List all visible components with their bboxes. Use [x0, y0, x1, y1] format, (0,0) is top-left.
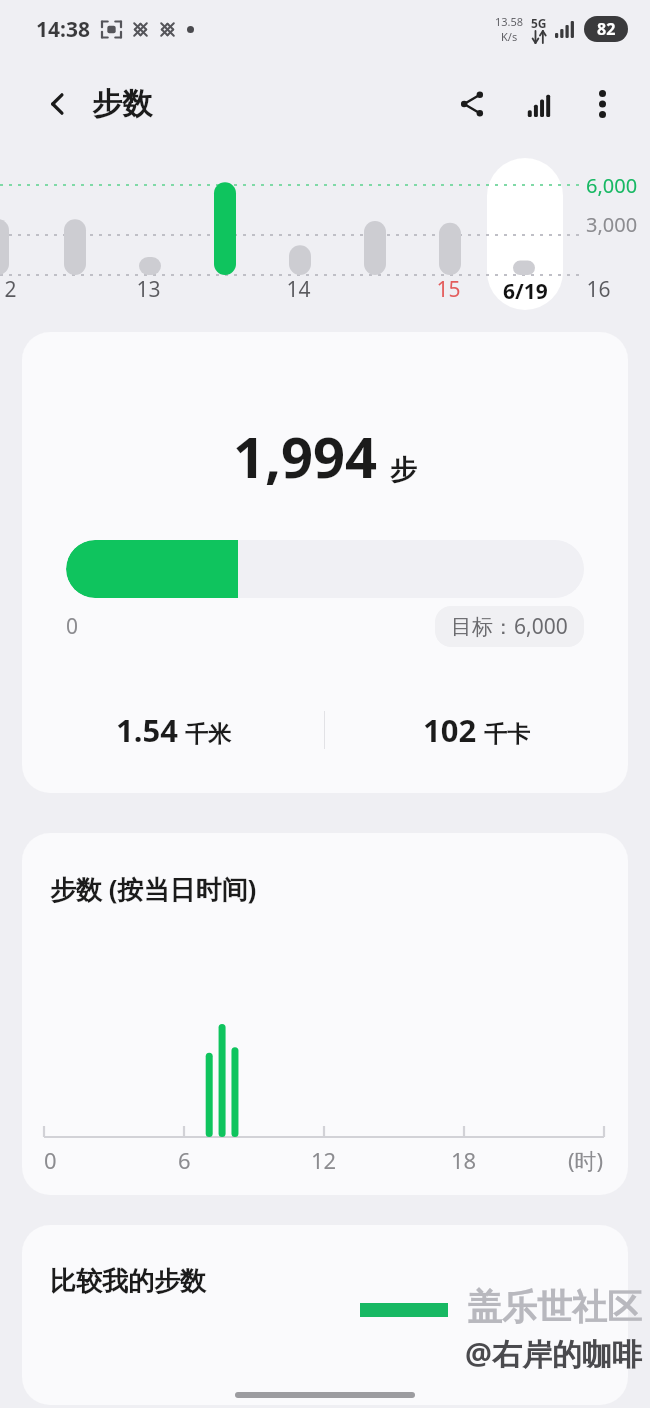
staticText: 14:38 — [36, 15, 90, 44]
button[interactable]: More options — [576, 78, 628, 130]
staticText: 盖乐世社区 — [467, 1285, 642, 1329]
staticText: 步数 (按当日时间) — [50, 871, 257, 907]
staticText: 102 — [423, 709, 477, 751]
staticText: 目标：6,000 — [451, 612, 568, 641]
button[interactable]: Charts — [514, 78, 566, 130]
staticText: K/s — [501, 29, 518, 44]
button[interactable]: 比较我的步数 — [22, 1225, 628, 1405]
staticText: 6,000 — [586, 172, 638, 199]
staticText: 3,000 — [586, 211, 638, 238]
button[interactable]: Share — [446, 78, 498, 130]
staticText: 1.54 — [116, 709, 178, 751]
staticText: 5G — [531, 15, 547, 31]
button[interactable]: 步数 (按当日时间) — [22, 833, 628, 1195]
staticText: 6/19 — [503, 277, 548, 306]
staticText: 1,994 — [233, 418, 378, 494]
staticText: 6 — [178, 1145, 191, 1175]
staticText: 步数 — [92, 85, 152, 123]
staticText: (时) — [568, 1145, 604, 1175]
staticText: 步 — [390, 453, 417, 487]
staticText: 14 — [286, 275, 311, 304]
staticText: 13.58 — [495, 14, 524, 29]
staticText: 千卡 — [484, 720, 530, 749]
staticText: 13 — [136, 275, 161, 304]
staticText: @右岸的咖啡 — [465, 1333, 642, 1374]
staticText: 2 — [4, 275, 17, 304]
staticText: 0 — [66, 612, 79, 641]
button[interactable]: 1,994 — [22, 332, 628, 793]
staticText: 12 — [311, 1145, 337, 1175]
staticText: 15 — [436, 275, 461, 304]
staticText: 千米 — [185, 720, 231, 749]
button[interactable]: Back — [36, 82, 80, 126]
staticText: 0 — [44, 1145, 57, 1175]
staticText: 16 — [586, 275, 611, 304]
staticText: 比较我的步数 — [50, 1265, 206, 1298]
staticText: 18 — [451, 1145, 477, 1175]
staticText: 82 — [597, 18, 616, 40]
button[interactable] — [487, 158, 563, 310]
button[interactable]: 目标：6,000 — [451, 612, 568, 641]
